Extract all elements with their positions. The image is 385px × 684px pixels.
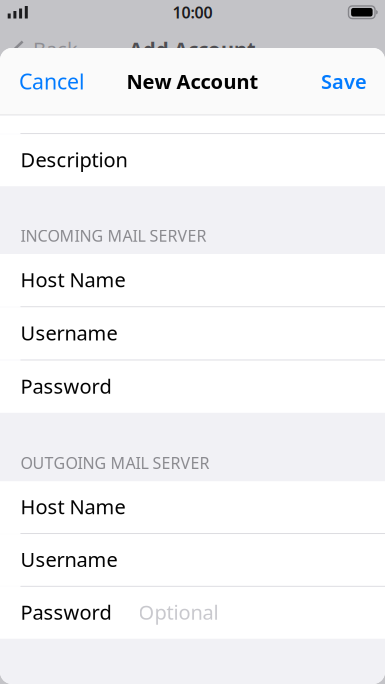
staticText: OUTGOING MAIL SERVER — [20, 452, 209, 473]
staticText: Add Account — [129, 36, 256, 62]
button[interactable]: Username — [0, 307, 385, 360]
staticText: Host Name — [20, 266, 125, 293]
button[interactable]: Back — [0, 27, 86, 71]
staticText: Password — [20, 373, 111, 399]
staticText: Save — [321, 68, 367, 95]
staticText: INCOMING MAIL SERVER — [20, 225, 206, 246]
staticText: Password — [20, 599, 111, 625]
staticText: Cancel — [19, 67, 85, 95]
button[interactable]: Save — [305, 53, 385, 110]
staticText: 10:00 — [172, 2, 212, 23]
staticText: Optional — [138, 599, 218, 625]
staticText: Back — [33, 36, 78, 62]
button[interactable]: Host Name — [0, 254, 385, 306]
staticText: Username — [20, 319, 117, 346]
button[interactable]: Password — [0, 587, 385, 639]
staticText: Description — [20, 146, 127, 173]
button[interactable]: Username — [0, 534, 385, 586]
staticText: New Account — [126, 68, 258, 95]
button[interactable]: Cancel — [0, 52, 101, 110]
button[interactable]: Host Name — [0, 481, 385, 533]
button[interactable]: Description — [0, 134, 385, 186]
button[interactable]: Password — [0, 361, 385, 413]
staticText: Host Name — [20, 493, 125, 520]
staticText: Username — [20, 546, 117, 572]
